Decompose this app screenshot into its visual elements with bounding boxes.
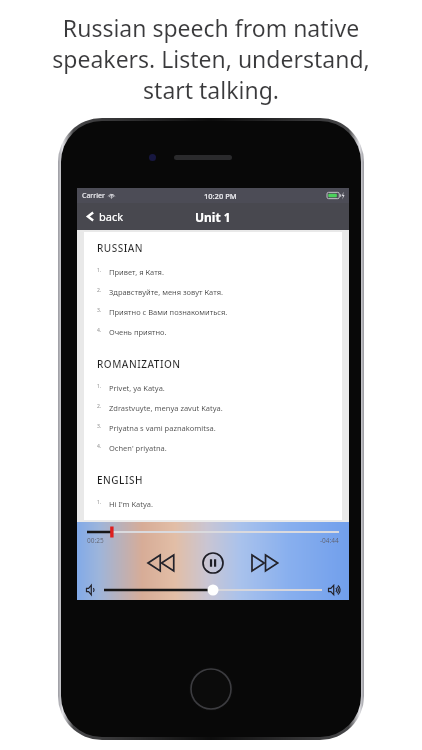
staticText: ENGLISH — [97, 473, 143, 487]
button[interactable]: 3. — [97, 418, 334, 438]
button[interactable]: Pause — [198, 548, 228, 578]
button[interactable]: 4. — [97, 322, 334, 342]
staticText: 3. — [97, 423, 109, 430]
button[interactable]: Home — [189, 667, 233, 711]
staticText: 1. — [97, 267, 109, 274]
staticText: 4. — [97, 443, 109, 450]
staticText: Очень приятно. — [109, 327, 167, 337]
button[interactable] — [87, 528, 339, 536]
staticText: start talking. — [24, 74, 398, 105]
staticText: 3. — [97, 307, 109, 314]
staticText: 00:25 — [87, 536, 104, 545]
staticText: Privet, ya Katya. — [109, 383, 165, 393]
staticText: Carrier — [82, 191, 105, 201]
button[interactable]: back — [81, 205, 128, 228]
staticText: back — [99, 209, 124, 224]
staticText: -04:44 — [320, 536, 339, 545]
button[interactable]: Volume up — [326, 584, 342, 596]
staticText: Priyatna s vami paznakomitsa. — [109, 423, 216, 433]
staticText: ROMANIZATION — [97, 357, 181, 371]
staticText: 2. — [97, 403, 109, 410]
staticText: Привет, я Катя. — [109, 267, 164, 277]
button[interactable]: 1. — [97, 378, 334, 398]
button[interactable]: 4. — [97, 438, 334, 458]
staticText: 2. — [97, 287, 109, 294]
staticText: 4. — [97, 327, 109, 334]
staticText: Zdrastvuyte, menya zavut Katya. — [109, 403, 223, 413]
button[interactable] — [104, 584, 322, 596]
staticText: Russian speech from native — [24, 12, 398, 43]
button[interactable]: 2. — [97, 282, 334, 302]
staticText: 1. — [97, 499, 109, 506]
button[interactable]: Rewind — [144, 546, 178, 580]
staticText: Ochen' priyatna. — [109, 443, 167, 453]
button[interactable]: 3. — [97, 302, 334, 322]
staticText: RUSSIAN — [97, 241, 144, 255]
button[interactable]: 1. — [97, 494, 334, 514]
button[interactable]: Volume down — [84, 584, 100, 596]
staticText: Hi I'm Katya. — [109, 499, 154, 509]
staticText: Приятно с Вами познакомиться. — [109, 307, 228, 317]
staticText: Здравствуйте, меня зовут Катя. — [109, 287, 223, 297]
staticText: Unit 1 — [195, 209, 231, 225]
staticText: 10:20 PM — [204, 191, 237, 201]
button[interactable]: 1. — [97, 262, 334, 282]
staticText: speakers. Listen, understand, — [24, 43, 398, 74]
button[interactable]: Fast forward — [248, 546, 282, 580]
button[interactable]: 2. — [97, 398, 334, 418]
staticText: 1. — [97, 383, 109, 390]
